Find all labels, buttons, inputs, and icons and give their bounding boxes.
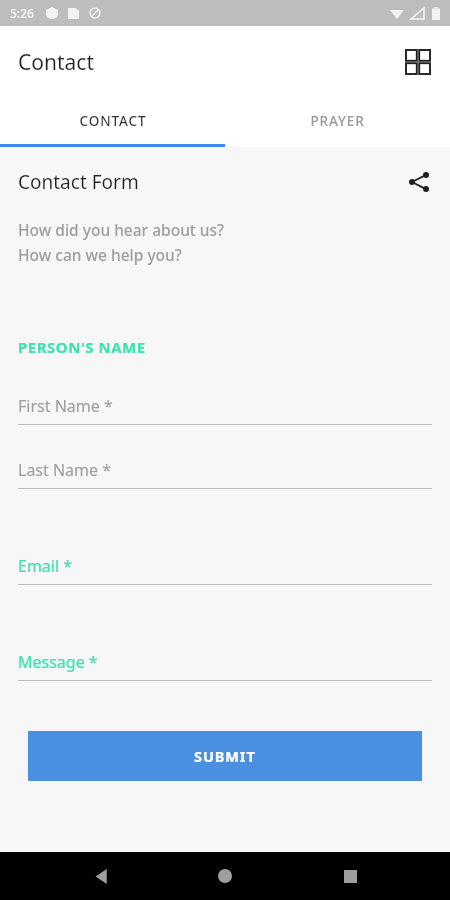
staticText: 5:26 — [10, 5, 34, 21]
staticText: PRAYER — [310, 112, 365, 130]
staticText: SUBMIT — [194, 746, 256, 766]
staticText: Message * — [18, 651, 98, 673]
button[interactable]: SUBMIT — [28, 731, 422, 781]
staticText: How can we help you? — [18, 244, 182, 265]
button[interactable]: CONTACT — [0, 98, 225, 144]
staticText: Last Name * — [18, 459, 112, 481]
button[interactable]: PRAYER — [225, 98, 450, 144]
staticText: Contact Form — [18, 169, 398, 195]
staticText: PERSON'S NAME — [18, 337, 146, 357]
staticText: Contact — [18, 48, 94, 77]
staticText: How did you hear about us? — [18, 219, 225, 240]
button[interactable]: Back — [77, 852, 125, 900]
button[interactable]: Grid view — [396, 40, 440, 84]
button[interactable]: Recent apps — [326, 852, 374, 900]
staticText: Email * — [18, 555, 73, 577]
staticText: First Name * — [18, 395, 113, 417]
button[interactable]: Home — [201, 852, 249, 900]
staticText: CONTACT — [79, 112, 147, 130]
button[interactable]: Share — [398, 161, 440, 203]
